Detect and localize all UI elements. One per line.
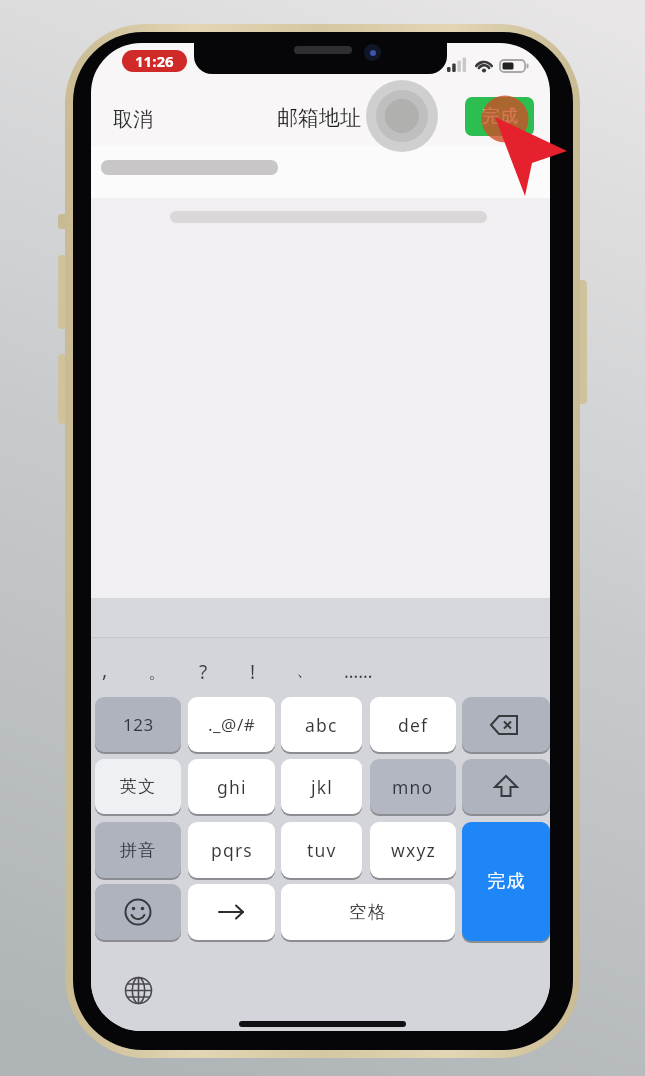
- button[interactable]: 取消: [105, 104, 161, 134]
- staticText: pqrs: [211, 838, 253, 862]
- staticText: 邮箱地址: [277, 105, 361, 131]
- button[interactable]: 英文: [95, 759, 181, 814]
- button[interactable]: 空格: [281, 884, 455, 940]
- staticText: ,: [102, 656, 108, 683]
- button[interactable]: mno: [370, 759, 456, 814]
- button[interactable]: tuv: [281, 822, 362, 878]
- staticText: 取消: [113, 107, 153, 132]
- staticText: !: [250, 659, 256, 685]
- button[interactable]: wxyz: [370, 822, 456, 878]
- staticText: ……: [344, 659, 373, 684]
- button[interactable]: [95, 884, 181, 940]
- button[interactable]: [91, 146, 550, 198]
- staticText: jkl: [311, 775, 333, 799]
- button[interactable]: [122, 974, 154, 1006]
- staticText: tuv: [307, 838, 337, 862]
- staticText: ?: [199, 659, 208, 685]
- staticText: 。: [148, 661, 166, 684]
- button[interactable]: 拼音: [95, 822, 181, 878]
- staticText: ghi: [217, 775, 247, 799]
- button[interactable]: 完成: [462, 822, 550, 941]
- staticText: 完成: [482, 105, 518, 128]
- button[interactable]: def: [370, 697, 456, 752]
- staticText: wxyz: [391, 838, 436, 862]
- staticText: 123: [123, 713, 154, 736]
- staticText: 拼音: [120, 840, 157, 861]
- staticText: def: [398, 713, 429, 737]
- button[interactable]: 完成: [465, 97, 534, 136]
- staticText: abc: [305, 713, 338, 737]
- button[interactable]: 123: [95, 697, 181, 752]
- staticText: 空格: [349, 901, 387, 923]
- button[interactable]: abc: [281, 697, 362, 752]
- staticText: mno: [392, 775, 434, 799]
- button[interactable]: ghi: [188, 759, 275, 814]
- button[interactable]: pqrs: [188, 822, 275, 878]
- staticText: 英文: [120, 776, 157, 797]
- staticText: ._@/#: [208, 713, 256, 736]
- button[interactable]: jkl: [281, 759, 362, 814]
- staticText: 完成: [487, 870, 525, 893]
- button[interactable]: [462, 697, 550, 752]
- staticText: 11:26: [135, 51, 174, 71]
- button[interactable]: ._@/#: [188, 697, 275, 752]
- button[interactable]: [462, 759, 550, 814]
- button[interactable]: [188, 884, 275, 940]
- staticText: 、: [296, 659, 314, 682]
